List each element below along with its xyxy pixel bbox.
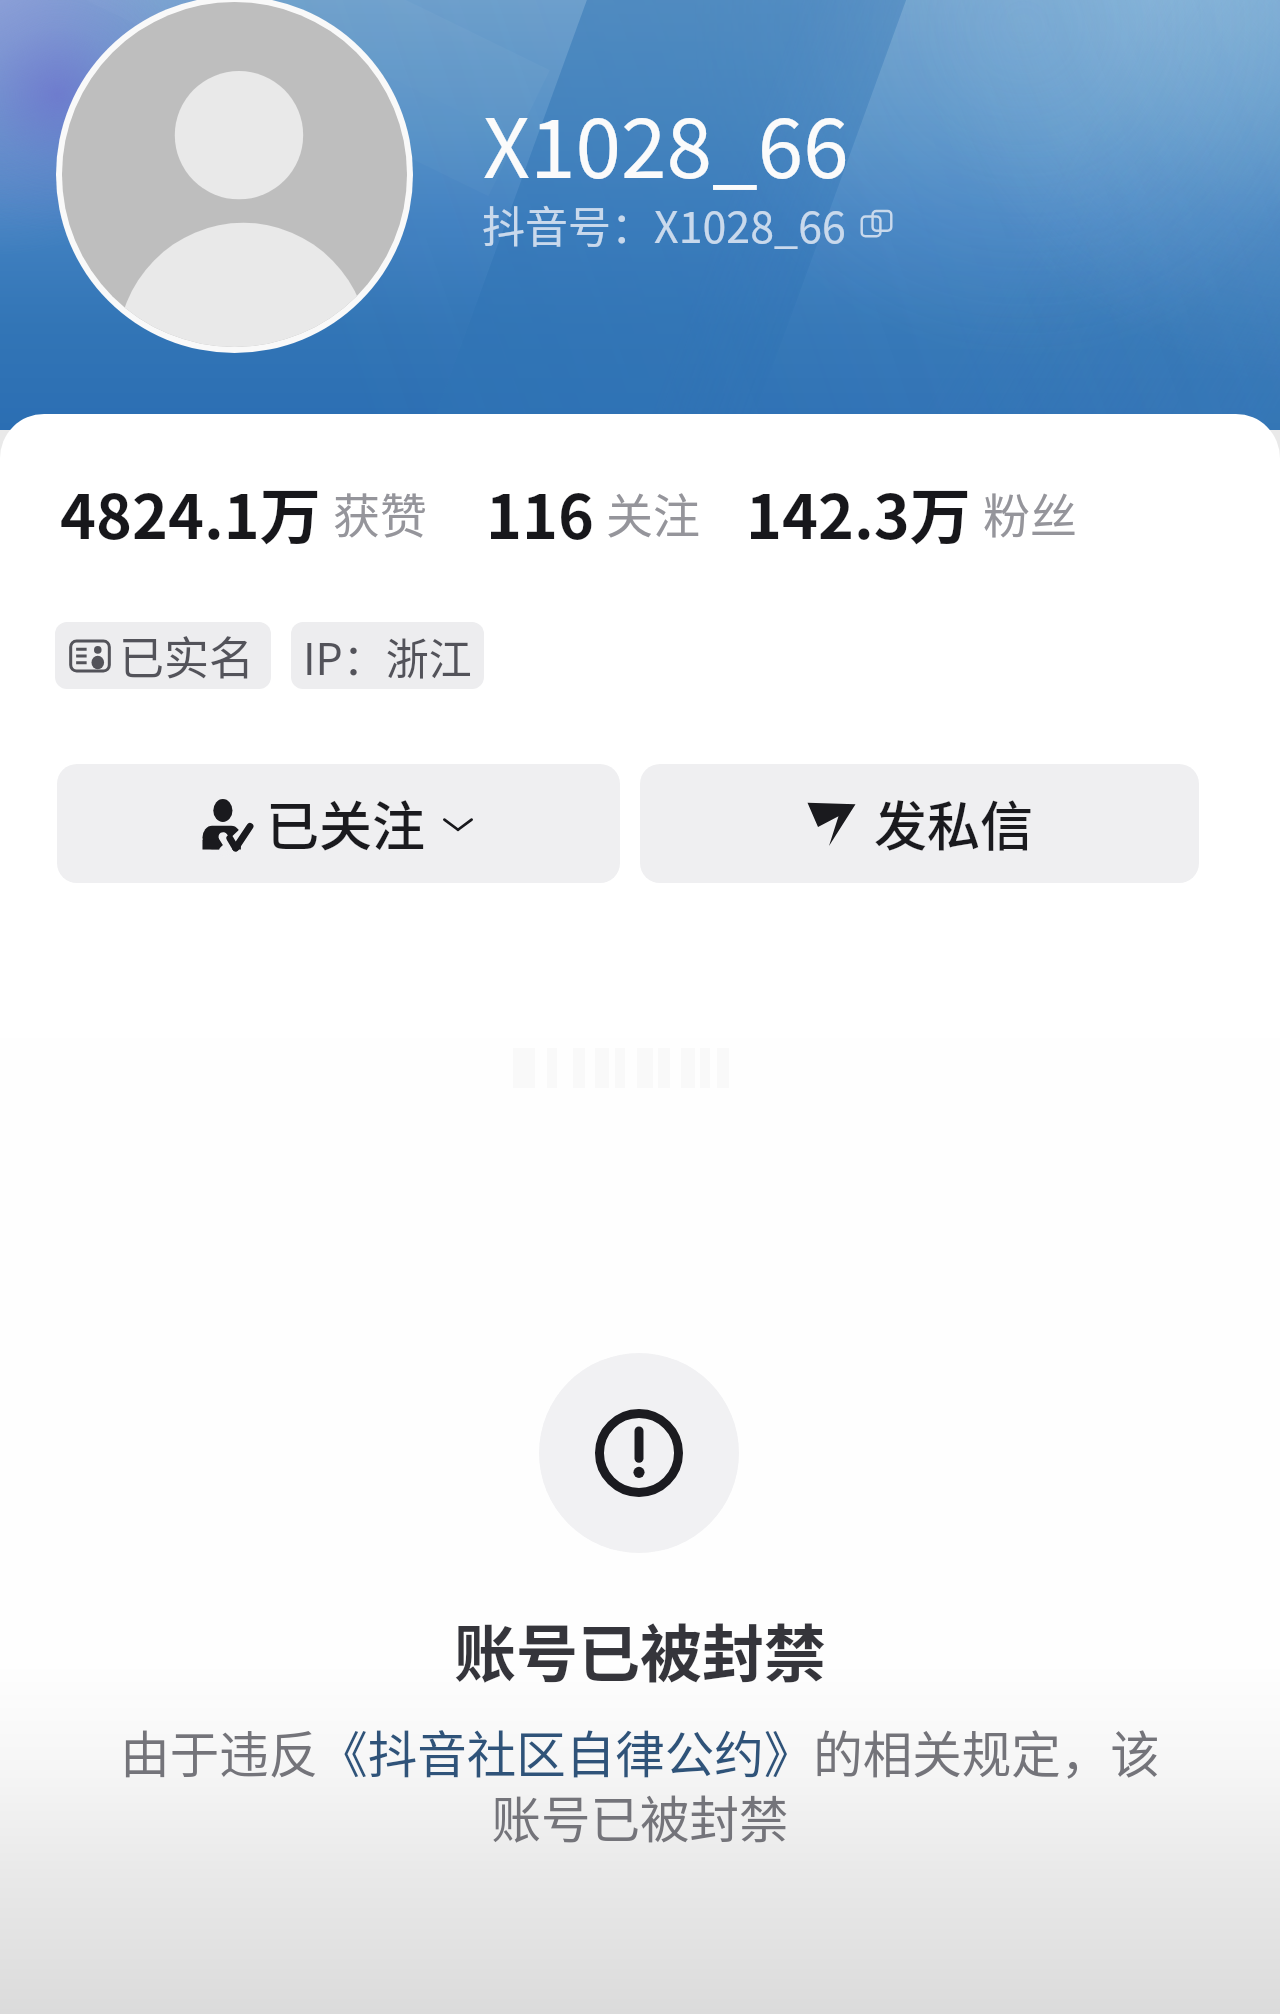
staticText: 116 xyxy=(486,468,594,556)
staticText: 获赞 xyxy=(333,478,427,546)
staticText: 已关注 xyxy=(266,785,425,862)
button[interactable]: IP：浙江 xyxy=(291,622,484,689)
staticText: 账号已被封禁 xyxy=(454,1605,827,1695)
staticText: 142.3万 xyxy=(746,468,971,556)
button[interactable]: Profile photo xyxy=(56,0,413,353)
staticText: 由于违反《抖音社区自律公约》的相关规定，该 账号已被封禁 xyxy=(0,1716,1280,1852)
staticText: 粉丝 xyxy=(983,478,1077,546)
staticText: 抖音号：X1028_66 xyxy=(482,193,846,255)
button[interactable]: Copy Douyin ID xyxy=(849,196,905,252)
staticText: 发私信 xyxy=(874,785,1033,862)
button[interactable]: 116 xyxy=(486,468,700,556)
staticText: 关注 xyxy=(606,478,700,546)
button[interactable]: 发私信 xyxy=(640,764,1199,883)
button[interactable]: 已关注 xyxy=(57,764,620,883)
button[interactable]: 142.3万 xyxy=(746,468,1077,556)
button[interactable]: 4824.1万 xyxy=(60,468,427,556)
staticText: 4824.1万 xyxy=(60,468,321,556)
button[interactable]: 已实名 xyxy=(55,622,271,689)
staticText: 已实名 xyxy=(119,623,255,688)
staticText: IP：浙江 xyxy=(303,625,472,687)
staticText: X1028_66 xyxy=(483,83,849,202)
